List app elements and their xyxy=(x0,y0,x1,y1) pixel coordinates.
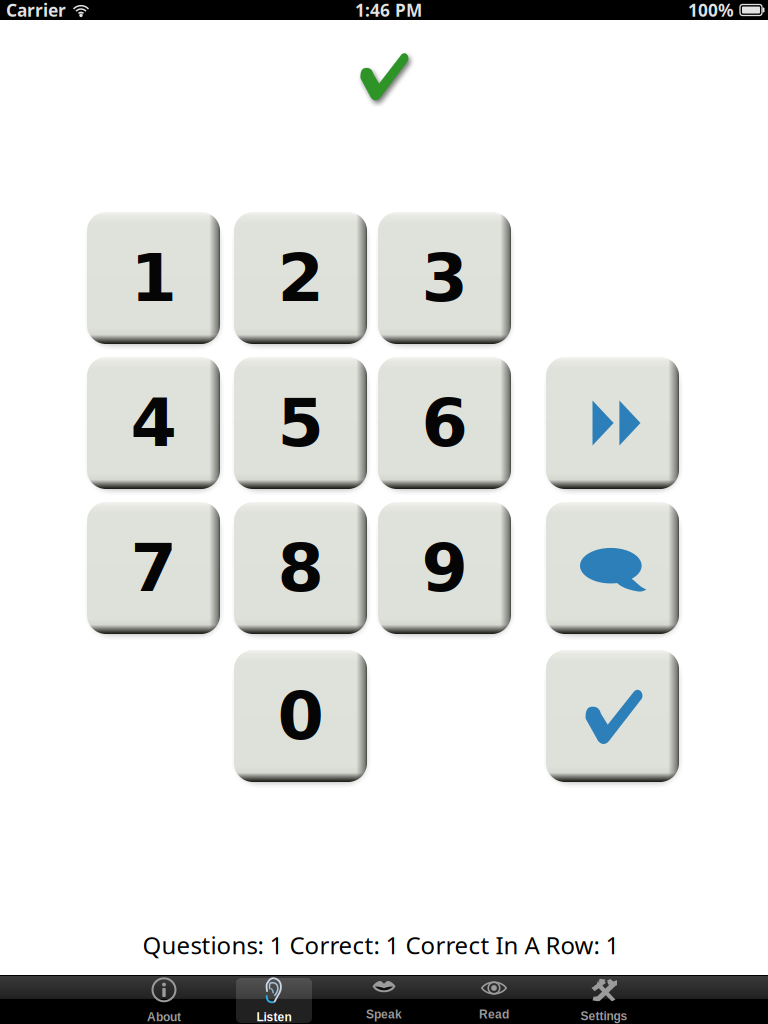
button[interactable]: 5 xyxy=(234,357,367,489)
button[interactable]: 0 xyxy=(234,650,367,782)
button[interactable]: 4 xyxy=(87,357,220,489)
staticText: About xyxy=(147,1010,181,1024)
button[interactable]: 3 xyxy=(378,212,511,344)
button[interactable]: Next xyxy=(546,357,679,489)
button[interactable]: Speak xyxy=(329,975,439,1024)
staticText: 1:46 PM xyxy=(355,0,422,21)
button[interactable]: 6 xyxy=(378,357,511,489)
button[interactable]: Settings xyxy=(549,975,659,1024)
button[interactable]: 1 xyxy=(87,212,220,344)
button[interactable]: 2 xyxy=(234,212,367,344)
staticText: 5 xyxy=(277,384,323,462)
staticText: Settings xyxy=(580,1009,627,1023)
button[interactable]: Listen xyxy=(219,975,329,1024)
staticText: 9 xyxy=(421,529,467,607)
staticText: Questions: 1 Correct: 1 Correct In A Row… xyxy=(142,929,619,961)
staticText: Read xyxy=(479,1008,509,1021)
staticText: 8 xyxy=(277,529,323,607)
staticText: 2 xyxy=(277,239,323,317)
staticText: 0 xyxy=(277,677,323,755)
staticText: Speak xyxy=(366,1008,402,1021)
staticText: 4 xyxy=(130,384,176,462)
staticText: 1 xyxy=(130,239,176,317)
staticText: Carrier xyxy=(6,0,66,21)
button[interactable]: Submit xyxy=(546,650,679,782)
button[interactable]: About xyxy=(109,975,219,1024)
staticText: 3 xyxy=(421,239,467,317)
staticText: 6 xyxy=(421,384,467,462)
staticText: 7 xyxy=(130,529,176,607)
staticText: 100% xyxy=(688,0,734,21)
button[interactable]: Read xyxy=(439,975,549,1024)
staticText: Listen xyxy=(256,1010,291,1024)
button[interactable]: 7 xyxy=(87,502,220,634)
button[interactable]: Speak xyxy=(546,502,679,634)
button[interactable]: 9 xyxy=(378,502,511,634)
button[interactable]: 8 xyxy=(234,502,367,634)
